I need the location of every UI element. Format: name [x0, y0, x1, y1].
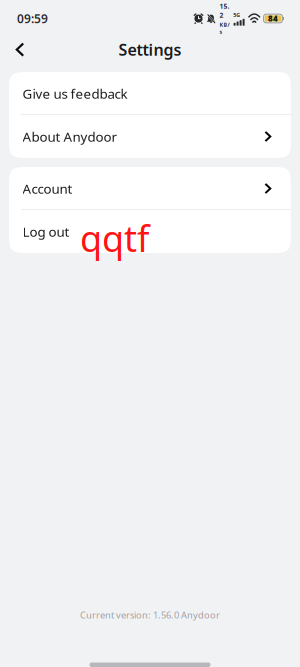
staticText: Settings — [118, 39, 181, 60]
staticText: 09:59 — [17, 10, 48, 26]
staticText: 15.2 — [220, 2, 230, 19]
button[interactable]: Back — [1, 33, 39, 67]
button[interactable]: About Anydoor — [9, 115, 291, 158]
button[interactable]: Give us feedback — [9, 72, 291, 115]
staticText: 5G — [233, 11, 240, 18]
button[interactable]: Log out — [9, 210, 291, 253]
staticText: qqtf — [80, 214, 149, 262]
button[interactable]: Account — [9, 167, 291, 210]
staticText: 84 — [268, 13, 278, 24]
staticText: About Anydoor — [22, 128, 117, 145]
staticText: Log out — [22, 223, 69, 240]
staticText: Current version: 1.56.0 Anydoor — [80, 609, 220, 621]
staticText: KB/s — [220, 21, 230, 35]
staticText: Account — [22, 180, 72, 197]
staticText: Give us feedback — [22, 85, 127, 102]
